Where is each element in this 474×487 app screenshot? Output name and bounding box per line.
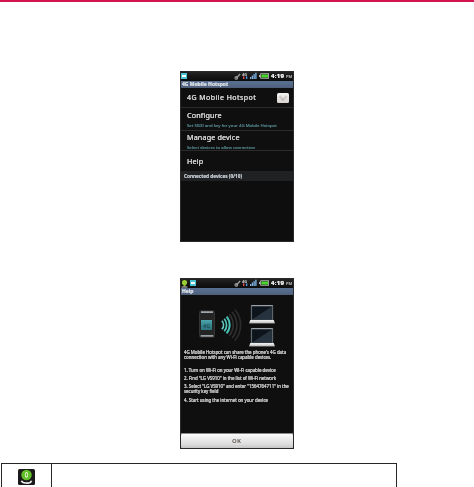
button[interactable]: Help [180, 151, 294, 171]
staticText: PM [286, 281, 293, 286]
staticText: PM [286, 74, 293, 79]
staticText: OK [232, 437, 242, 445]
staticText: Select devices to allow connection [187, 144, 256, 150]
staticText: Help [187, 156, 204, 166]
staticText: Connected devices (0/10) [184, 173, 242, 179]
staticText: Set SSID and key for your 4G Mobile Hots… [187, 122, 277, 128]
button[interactable]: OK [181, 434, 293, 448]
staticText: 4:19 [271, 279, 285, 287]
button[interactable]: 4G Mobile Hotspot [180, 88, 294, 107]
staticText: Configure [187, 110, 222, 120]
staticText: 2. Find "LG VS910" in the list of Wi-Fi … [184, 375, 277, 381]
staticText: 4. Start using the internet on your devi… [184, 397, 268, 403]
staticText: 4G [242, 72, 248, 77]
staticText: 4G [203, 322, 211, 329]
staticText: Help [182, 288, 194, 295]
staticText: 4G Mobile Hotspot [187, 93, 257, 103]
button[interactable]: Toggle 4G Mobile Hotspot [277, 93, 289, 103]
staticText: 4G Mobile Hotspot [182, 81, 229, 88]
button[interactable]: Manage device [180, 131, 294, 150]
button[interactable]: Configure [180, 108, 294, 130]
staticText: 1. Turn on Wi-Fi on your Wi-Fi capable d… [184, 367, 276, 373]
staticText: 4G [242, 279, 248, 284]
staticText: Manage device [187, 132, 240, 142]
staticText: 3. Select "LG VS910" and enter "15647647… [184, 383, 290, 395]
staticText: 4G Mobile Hotspot can share the phone's … [184, 349, 290, 361]
staticText: 4:19 [271, 72, 285, 80]
